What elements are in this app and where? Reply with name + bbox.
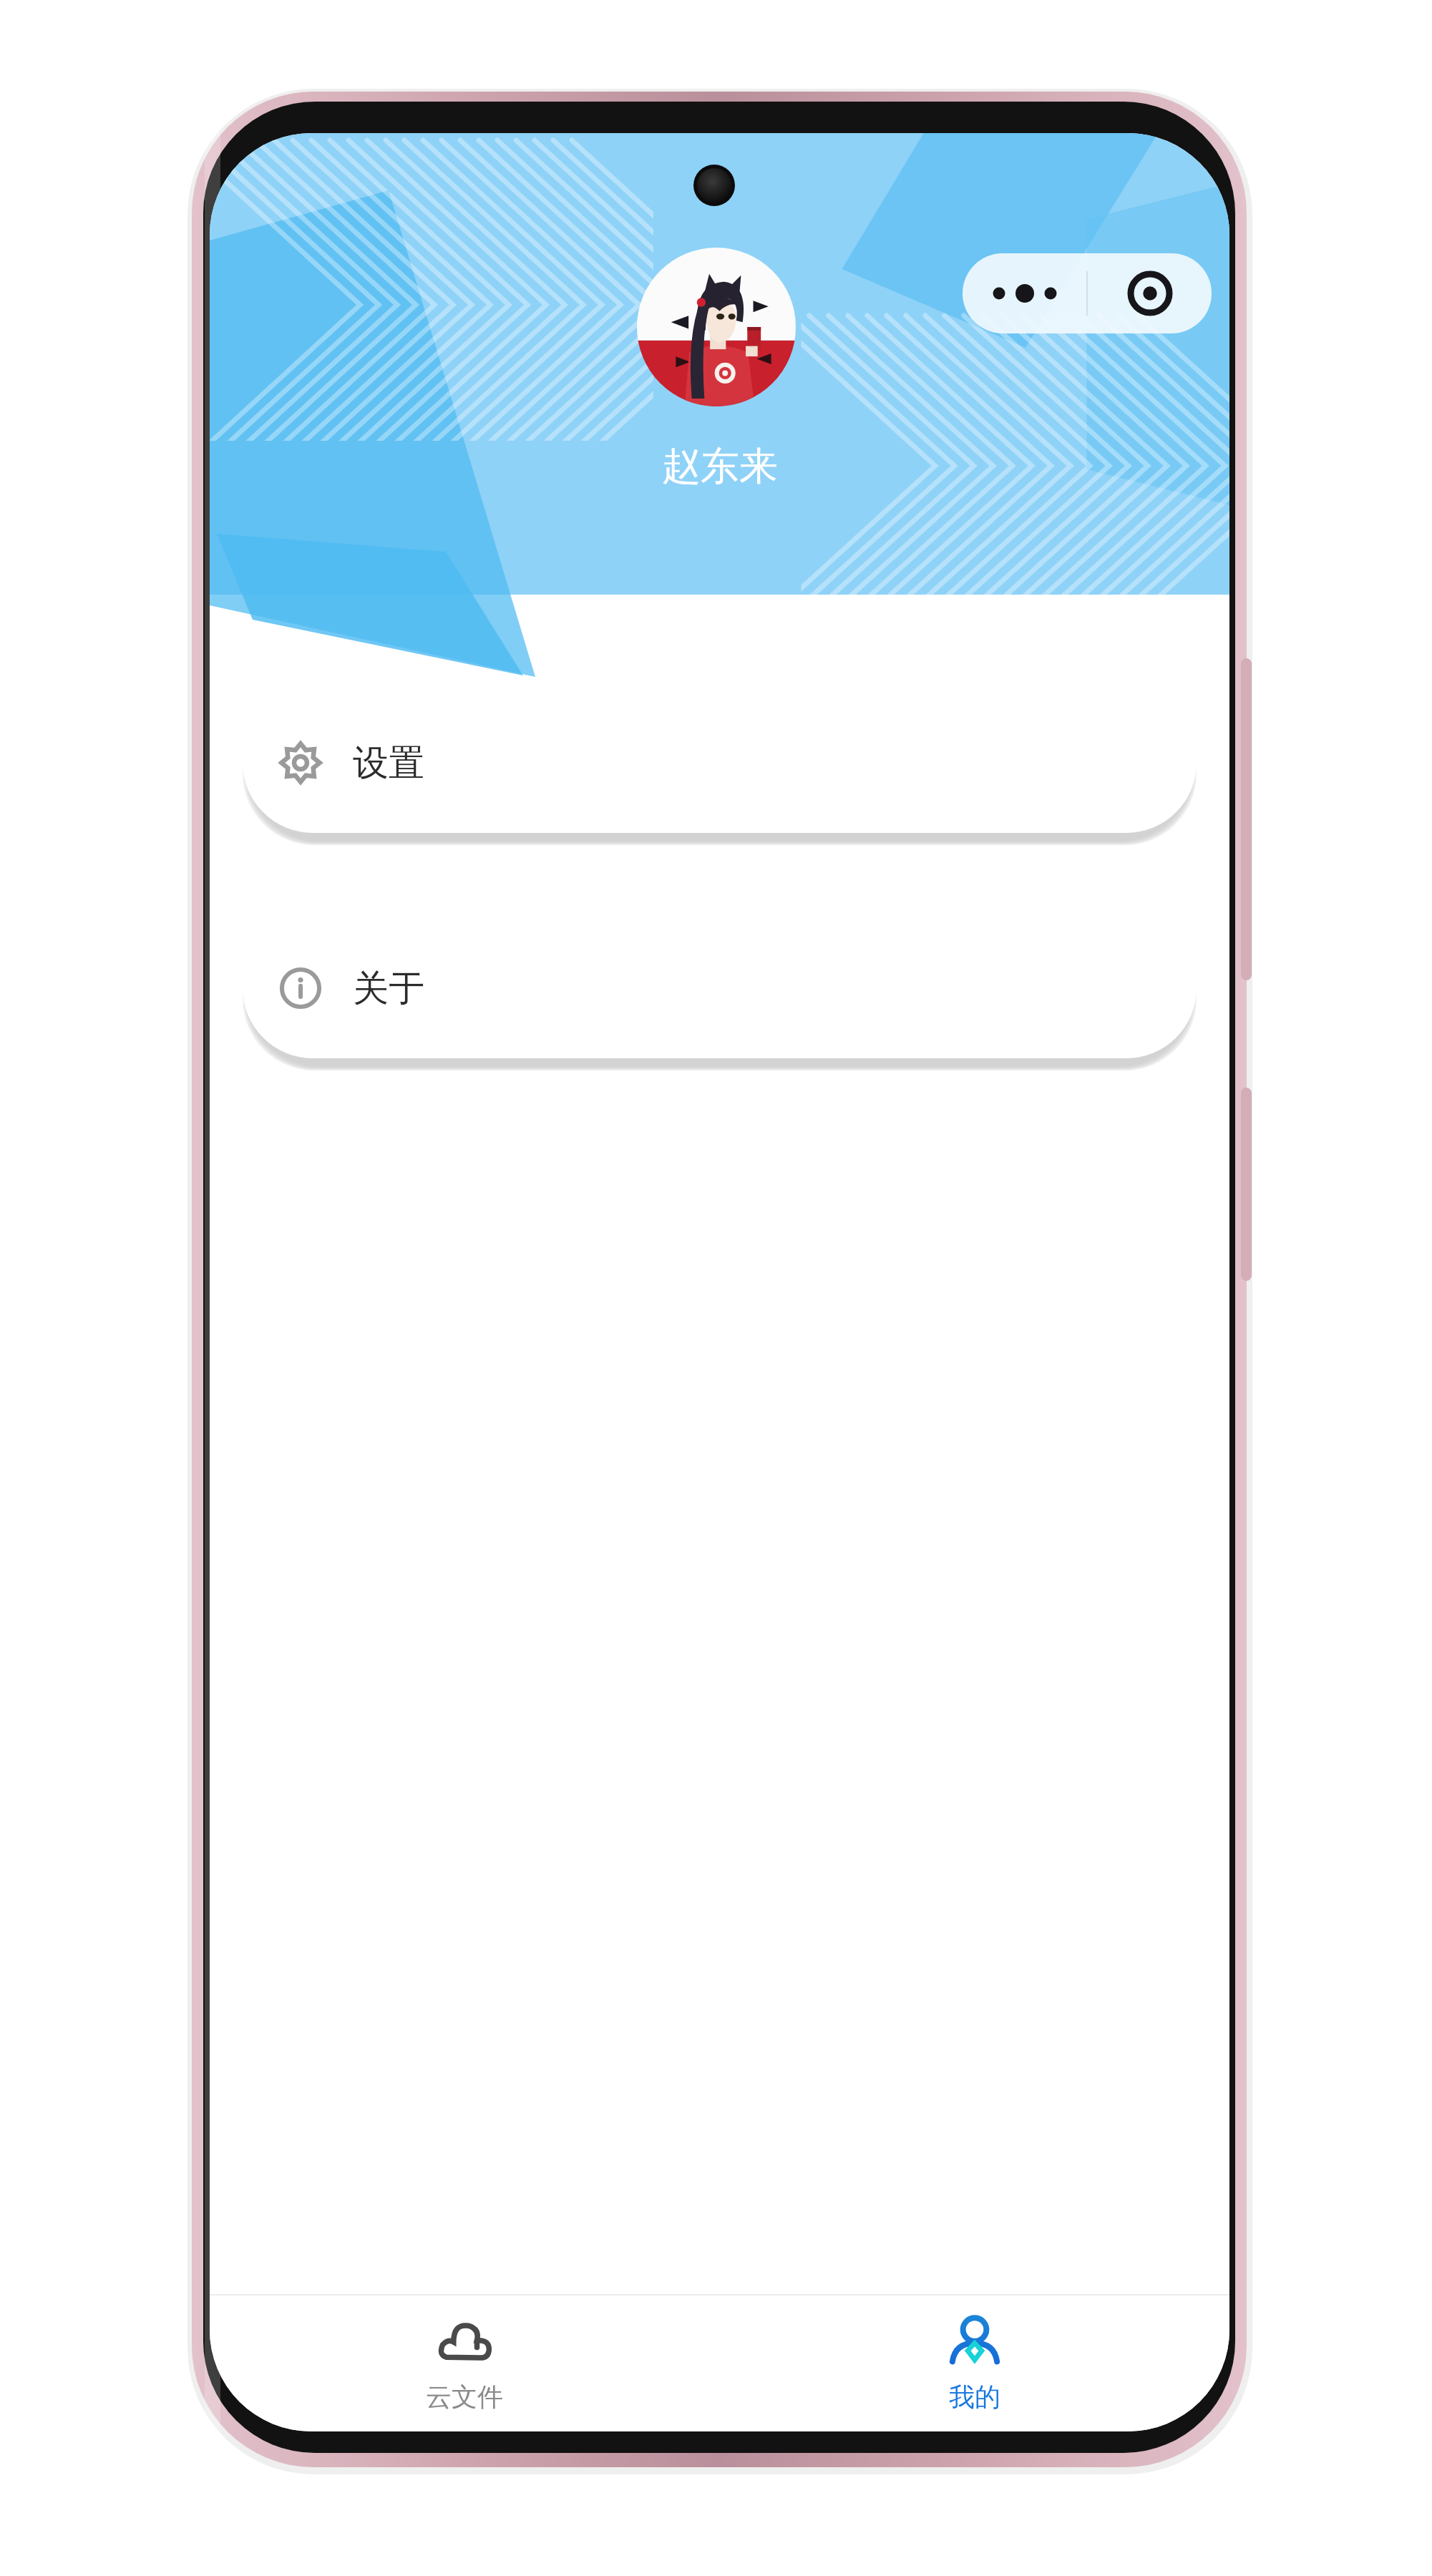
button[interactable]: More bbox=[963, 253, 1086, 333]
button[interactable]: 设置 bbox=[243, 693, 1197, 833]
staticText: 我的 bbox=[949, 2381, 1000, 2413]
button[interactable]: Close bbox=[1088, 253, 1212, 333]
staticText: 云文件 bbox=[426, 2381, 503, 2413]
staticText: 设置 bbox=[353, 741, 424, 786]
button[interactable]: 云文件 bbox=[210, 2296, 719, 2431]
button[interactable]: Profile photo bbox=[637, 248, 796, 406]
staticText: 关于 bbox=[353, 966, 424, 1011]
staticText: 赵东来 bbox=[662, 442, 778, 491]
button[interactable]: 关于 bbox=[243, 918, 1197, 1058]
button[interactable]: 我的 bbox=[719, 2296, 1229, 2431]
